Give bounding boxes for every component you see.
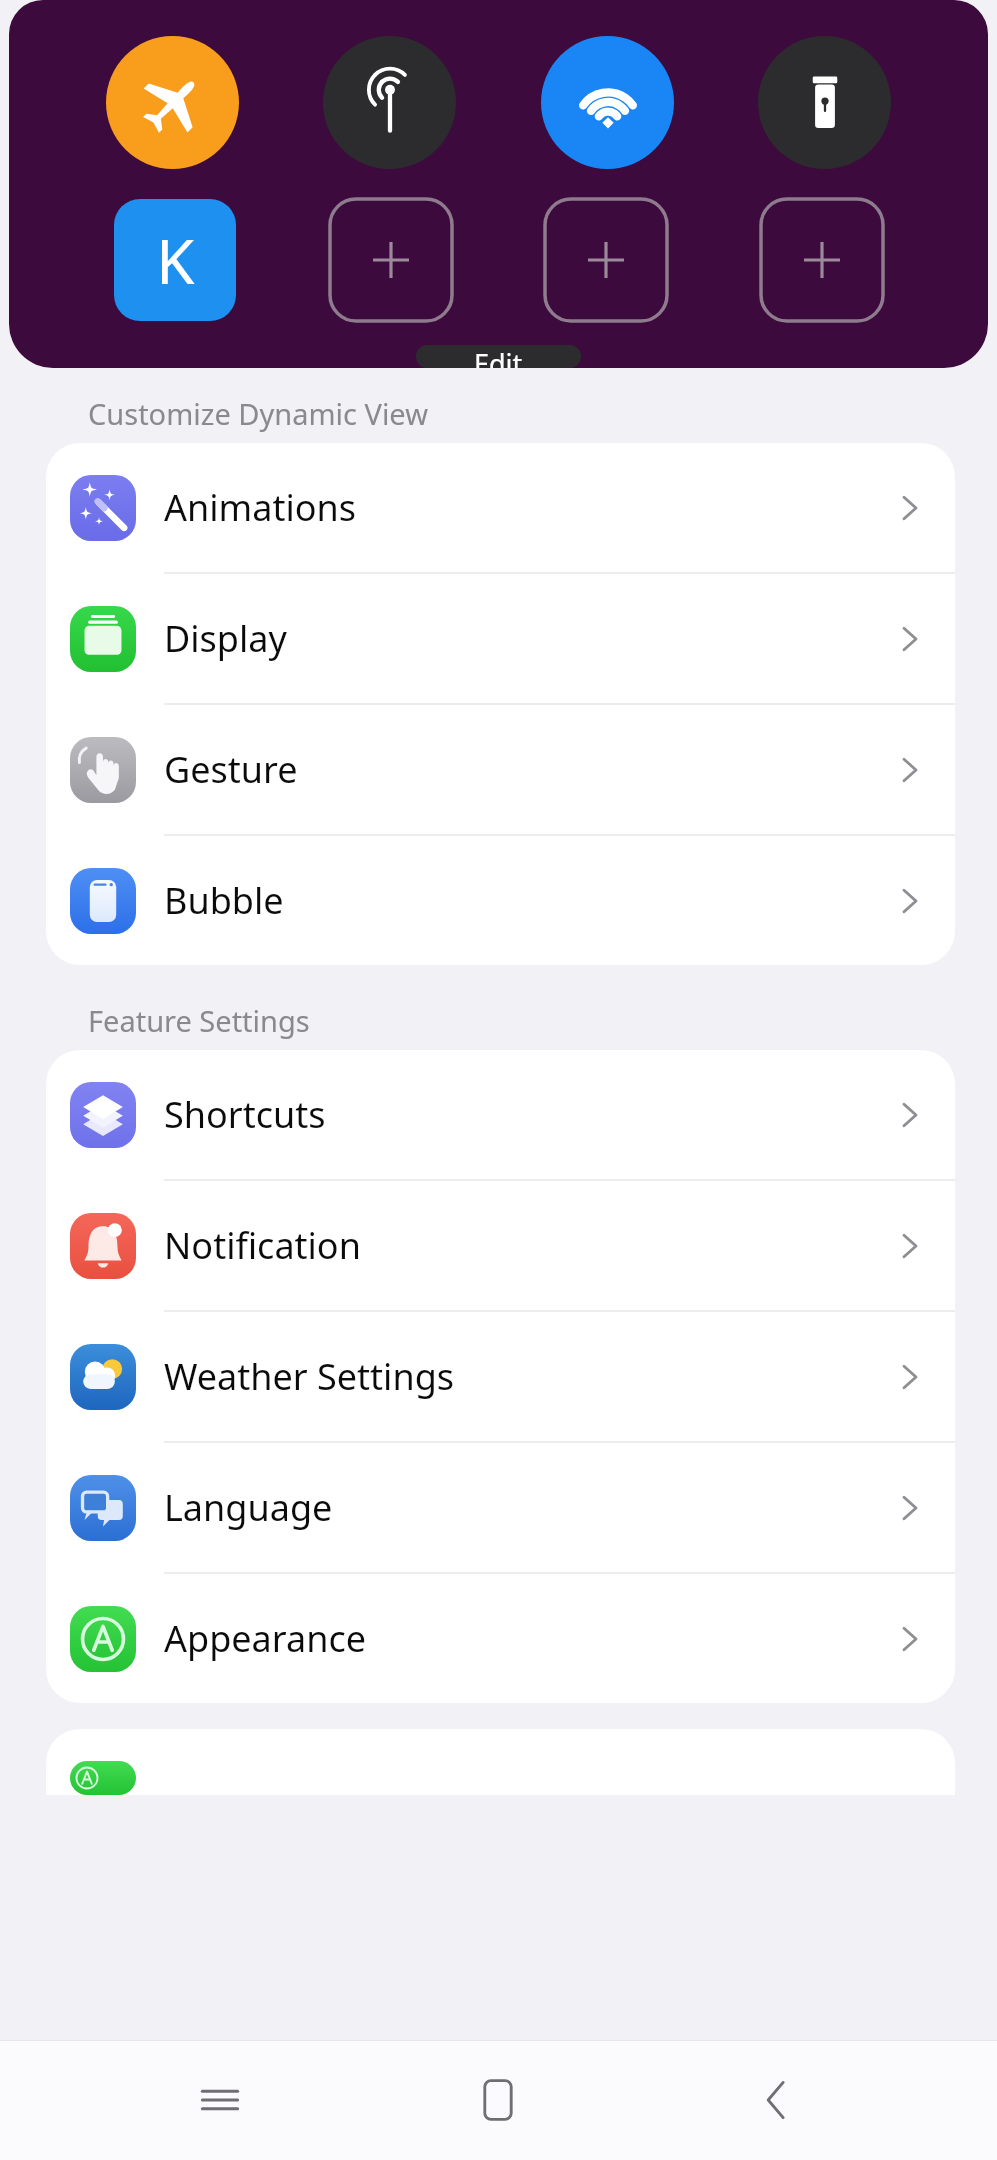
button[interactable]: Appearance [46,1574,955,1703]
staticText: Language [164,1483,333,1532]
button[interactable] [46,1729,955,1795]
button[interactable]: Display [46,574,955,705]
button[interactable]: Bubble [46,836,955,965]
staticText: Appearance [164,1614,366,1663]
staticText: Notification [164,1221,361,1270]
button[interactable]: Wi-Fi [541,36,674,169]
button[interactable]: Mobile data [323,36,456,169]
staticText: Edit [474,345,523,368]
staticText: Shortcuts [164,1090,326,1139]
staticText: Customize Dynamic View [88,394,428,433]
button[interactable]: Add shortcut [761,199,883,321]
staticText: Animations [164,483,356,532]
button[interactable]: Shortcut K [114,199,236,321]
button[interactable]: Weather Settings [46,1312,955,1443]
button[interactable]: Recents [170,2050,270,2150]
button[interactable]: Home [448,2050,548,2150]
button[interactable]: Gesture [46,705,955,836]
button[interactable]: Animations [46,443,955,574]
button[interactable]: Back [727,2050,827,2150]
button[interactable]: Notification [46,1181,955,1312]
staticText: K [156,218,195,302]
staticText: Feature Settings [88,1001,310,1040]
staticText: Weather Settings [164,1352,455,1401]
staticText: Gesture [164,745,298,794]
button[interactable]: Add shortcut [330,199,452,321]
staticText: Display [164,614,287,663]
button[interactable]: Add shortcut [545,199,667,321]
button[interactable]: Edit [416,345,581,368]
staticText: Bubble [164,876,284,925]
button[interactable]: Shortcuts [46,1050,955,1181]
button[interactable]: Language [46,1443,955,1574]
button[interactable]: Airplane mode [106,36,239,169]
button[interactable]: Flashlight [758,36,891,169]
